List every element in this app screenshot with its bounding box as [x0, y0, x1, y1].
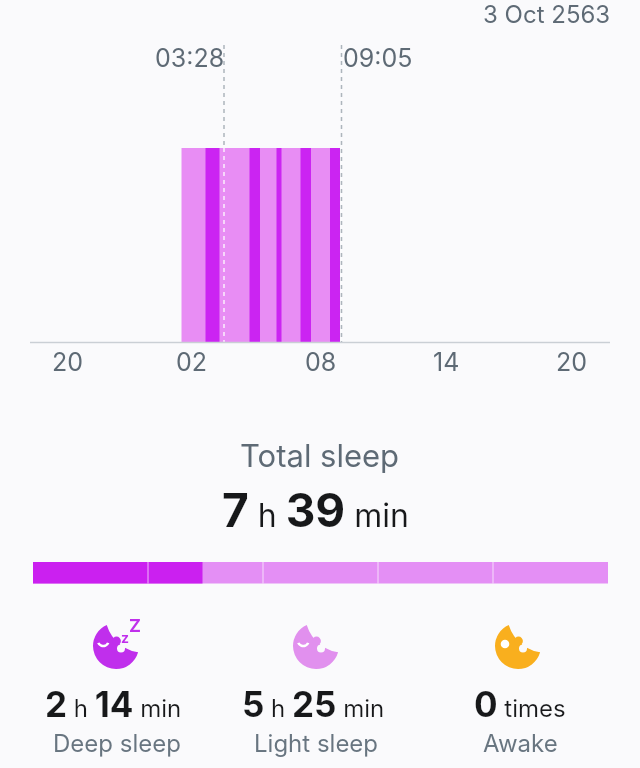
staticText: Deep sleep — [53, 729, 181, 758]
button[interactable] — [495, 621, 543, 669]
staticText: 3 Oct 2563 — [483, 0, 611, 29]
staticText: 08 — [305, 347, 337, 377]
staticText: 09:05 — [343, 43, 413, 73]
staticText: 03:28 — [155, 43, 225, 73]
staticText: 20 — [556, 347, 588, 377]
staticText: Light sleep — [254, 729, 379, 758]
staticText: Awake — [483, 729, 558, 758]
button[interactable] — [93, 621, 141, 669]
button[interactable]: 2 h 14 min — [0, 683, 233, 725]
button[interactable] — [293, 621, 341, 669]
staticText: Total sleep — [240, 437, 400, 475]
staticText: 14 — [433, 347, 460, 377]
staticText: Z — [129, 615, 141, 637]
staticText: 7 h 39 min — [222, 482, 409, 538]
staticText: 5 h 25 min — [242, 683, 385, 725]
staticText: 0 times — [474, 683, 566, 725]
staticText: 2 h 14 min — [45, 683, 182, 725]
staticText: z — [121, 629, 130, 646]
button[interactable]: 0 times — [400, 683, 640, 725]
staticText: 20 — [52, 347, 84, 377]
staticText: 02 — [176, 347, 208, 377]
button[interactable]: 5 h 25 min — [193, 683, 433, 725]
